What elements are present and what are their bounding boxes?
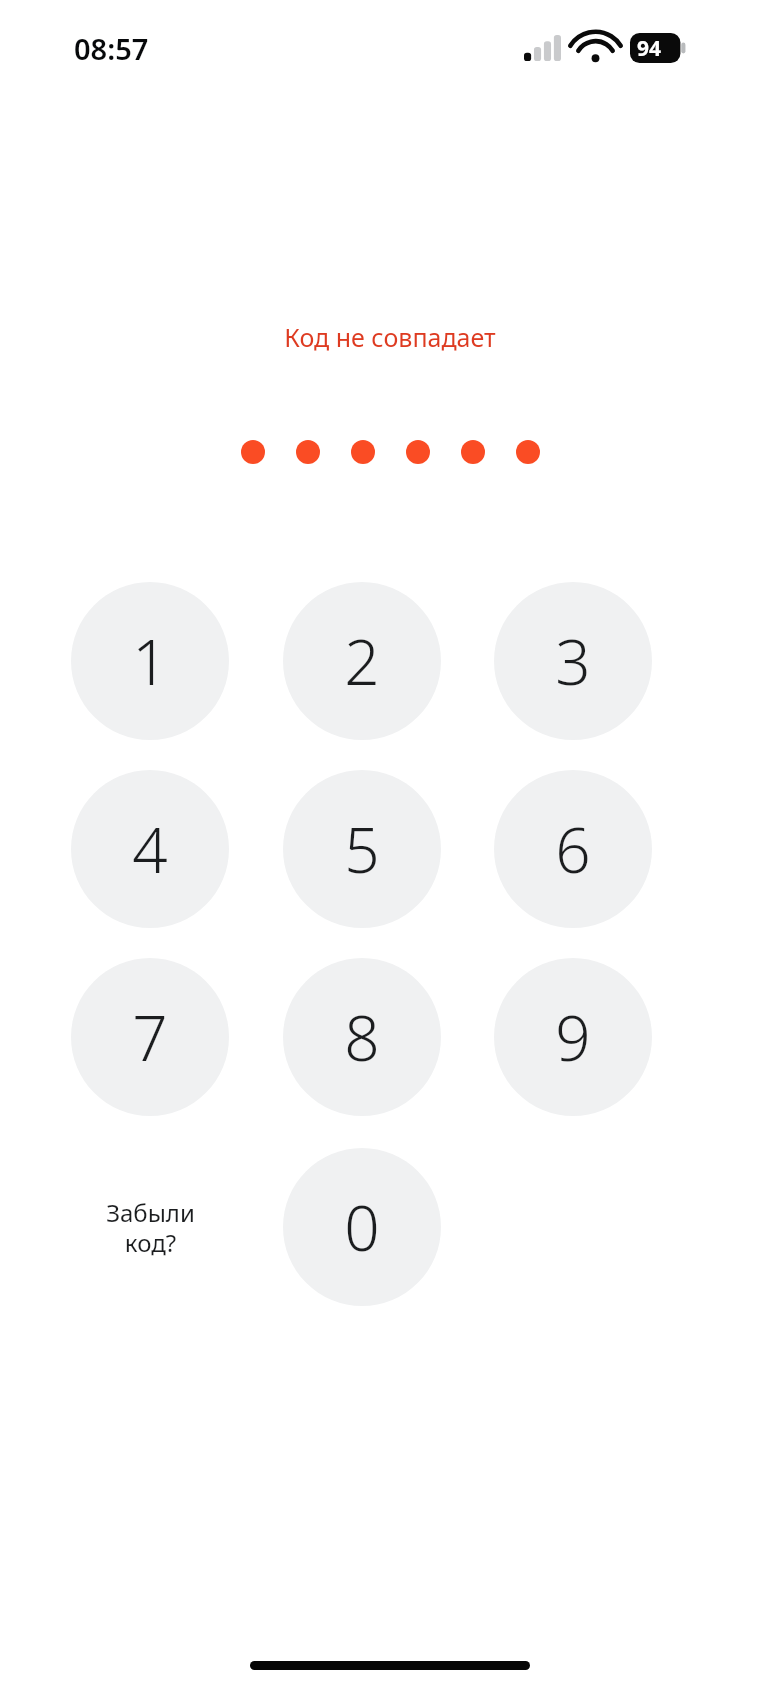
staticText: 9: [555, 995, 591, 1079]
staticText: 4: [132, 807, 168, 891]
staticText: 94: [637, 34, 662, 63]
staticText: 08:57: [74, 29, 149, 68]
button[interactable]: Забыли код?: [71, 1148, 229, 1306]
button[interactable]: Digit 8: [283, 958, 441, 1116]
staticText: 5: [344, 807, 380, 891]
button[interactable]: Digit 9: [494, 958, 652, 1116]
button[interactable]: Digit 7: [71, 958, 229, 1116]
staticText: 2: [344, 619, 380, 703]
staticText: 1: [132, 619, 168, 703]
staticText: 6: [555, 807, 591, 891]
staticText: 0: [344, 1185, 380, 1269]
button[interactable]: Digit 0: [283, 1148, 441, 1306]
button[interactable]: Digit 4: [71, 770, 229, 928]
button[interactable]: Digit 3: [494, 582, 652, 740]
button[interactable]: Digit 5: [283, 770, 441, 928]
button[interactable]: Digit 2: [283, 582, 441, 740]
staticText: Код не совпадает: [284, 320, 496, 354]
staticText: 7: [132, 995, 168, 1079]
staticText: 3: [555, 619, 591, 703]
button[interactable]: Digit 6: [494, 770, 652, 928]
staticText: 8: [344, 995, 380, 1079]
button[interactable]: Digit 1: [71, 582, 229, 740]
staticText: Забыли код?: [106, 1196, 195, 1259]
